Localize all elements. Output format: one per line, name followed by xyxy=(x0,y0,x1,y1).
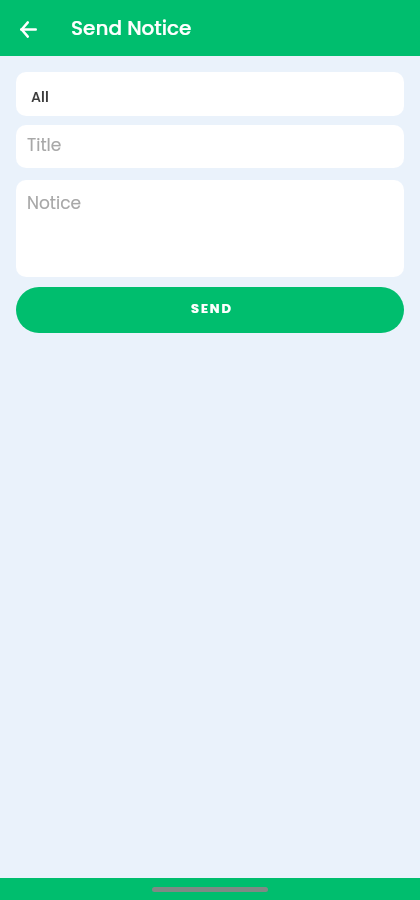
button[interactable]: Notice xyxy=(16,180,404,277)
staticText: Send Notice xyxy=(71,14,192,42)
staticText: SEND xyxy=(191,299,233,317)
button[interactable]: All xyxy=(16,72,404,116)
button[interactable]: Back xyxy=(0,0,56,56)
button[interactable]: SEND xyxy=(16,287,404,333)
button[interactable]: Title xyxy=(16,125,404,168)
staticText: Notice xyxy=(27,191,82,215)
staticText: All xyxy=(31,87,49,107)
staticText: Title xyxy=(27,133,62,157)
